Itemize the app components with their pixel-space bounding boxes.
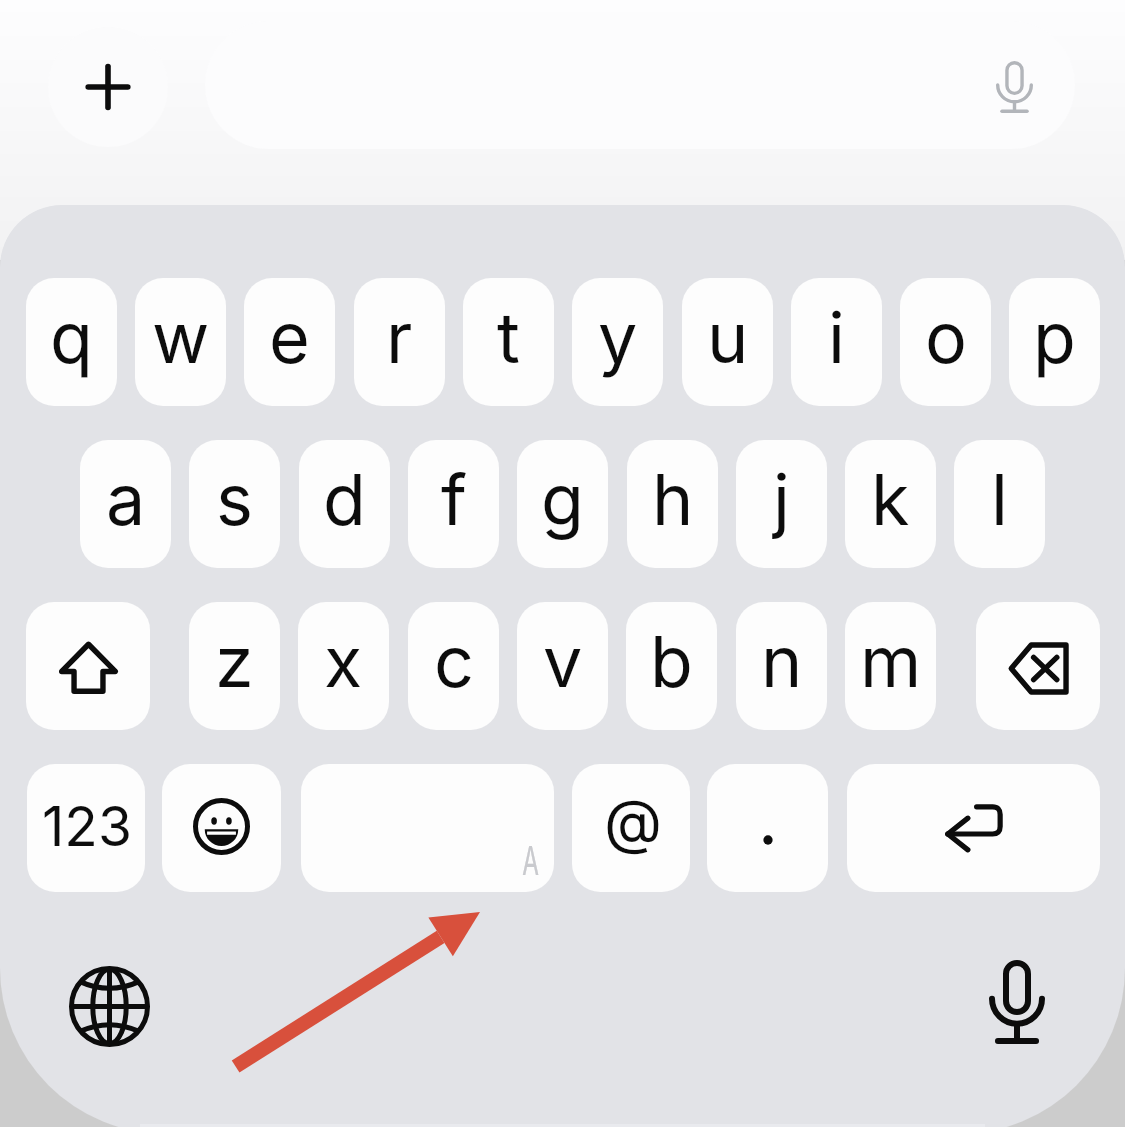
button[interactable]: Voice input (978, 51, 1050, 123)
staticText: v (543, 619, 583, 704)
staticText: m (860, 619, 922, 704)
button[interactable]: w (135, 278, 226, 406)
button[interactable]: i (791, 278, 882, 406)
button[interactable]: Add attachment (48, 27, 168, 147)
button[interactable]: a (80, 440, 171, 568)
button[interactable]: d (299, 440, 390, 568)
button[interactable]: At sign (572, 764, 690, 892)
staticText: l (991, 457, 1008, 542)
staticText: t (497, 295, 520, 380)
button[interactable]: u (682, 278, 773, 406)
button[interactable]: j (736, 440, 827, 568)
button[interactable]: Space (301, 764, 554, 892)
button[interactable]: Shift (26, 602, 150, 730)
button[interactable]: Voice typing (977, 955, 1057, 1049)
button[interactable]: Period (707, 764, 828, 892)
staticText: c (434, 619, 474, 704)
staticText: q (50, 295, 93, 380)
button[interactable]: y (572, 278, 663, 406)
button[interactable]: t (463, 278, 554, 406)
staticText: b (650, 619, 693, 704)
staticText: i (828, 295, 845, 380)
staticText: z (215, 619, 254, 704)
button[interactable]: f (408, 440, 499, 568)
staticText: a (106, 457, 146, 542)
staticText: g (541, 457, 584, 542)
staticText: @ (604, 785, 662, 858)
staticText: n (761, 619, 803, 704)
button[interactable]: Switch to numbers (27, 764, 145, 892)
staticText: x (324, 619, 363, 704)
staticText: h (652, 457, 694, 542)
button[interactable]: r (354, 278, 445, 406)
button[interactable]: p (1009, 278, 1100, 406)
button[interactable]: k (845, 440, 936, 568)
staticText: 123 (42, 793, 132, 860)
button[interactable]: Change keyboard language (64, 961, 154, 1051)
staticText: p (1033, 295, 1076, 380)
button[interactable]: n (736, 602, 827, 730)
staticText: d (323, 457, 366, 542)
staticText: j (773, 457, 790, 542)
button[interactable]: v (517, 602, 608, 730)
staticText: s (216, 457, 253, 542)
button[interactable]: e (244, 278, 335, 406)
button[interactable]: q (26, 278, 117, 406)
button[interactable]: h (627, 440, 718, 568)
button[interactable]: Enter (847, 764, 1100, 892)
staticText: w (152, 295, 210, 380)
staticText: f (441, 457, 467, 542)
button[interactable]: g (517, 440, 608, 568)
button[interactable]: o (900, 278, 991, 406)
button[interactable]: b (626, 602, 717, 730)
button[interactable]: l (954, 440, 1045, 568)
staticText: A (522, 837, 539, 884)
staticText: e (269, 295, 310, 380)
button[interactable]: Message input field (205, 21, 1075, 149)
staticText: k (871, 457, 910, 542)
button[interactable]: s (189, 440, 280, 568)
staticText: r (386, 295, 413, 380)
button[interactable]: x (298, 602, 389, 730)
staticText: o (925, 295, 967, 380)
staticText: y (598, 295, 638, 380)
staticText: u (707, 295, 749, 380)
button[interactable]: m (845, 602, 936, 730)
button[interactable]: Backspace (976, 602, 1100, 730)
button[interactable]: c (408, 602, 499, 730)
button[interactable]: Emoji (162, 764, 281, 892)
button[interactable]: z (189, 602, 280, 730)
